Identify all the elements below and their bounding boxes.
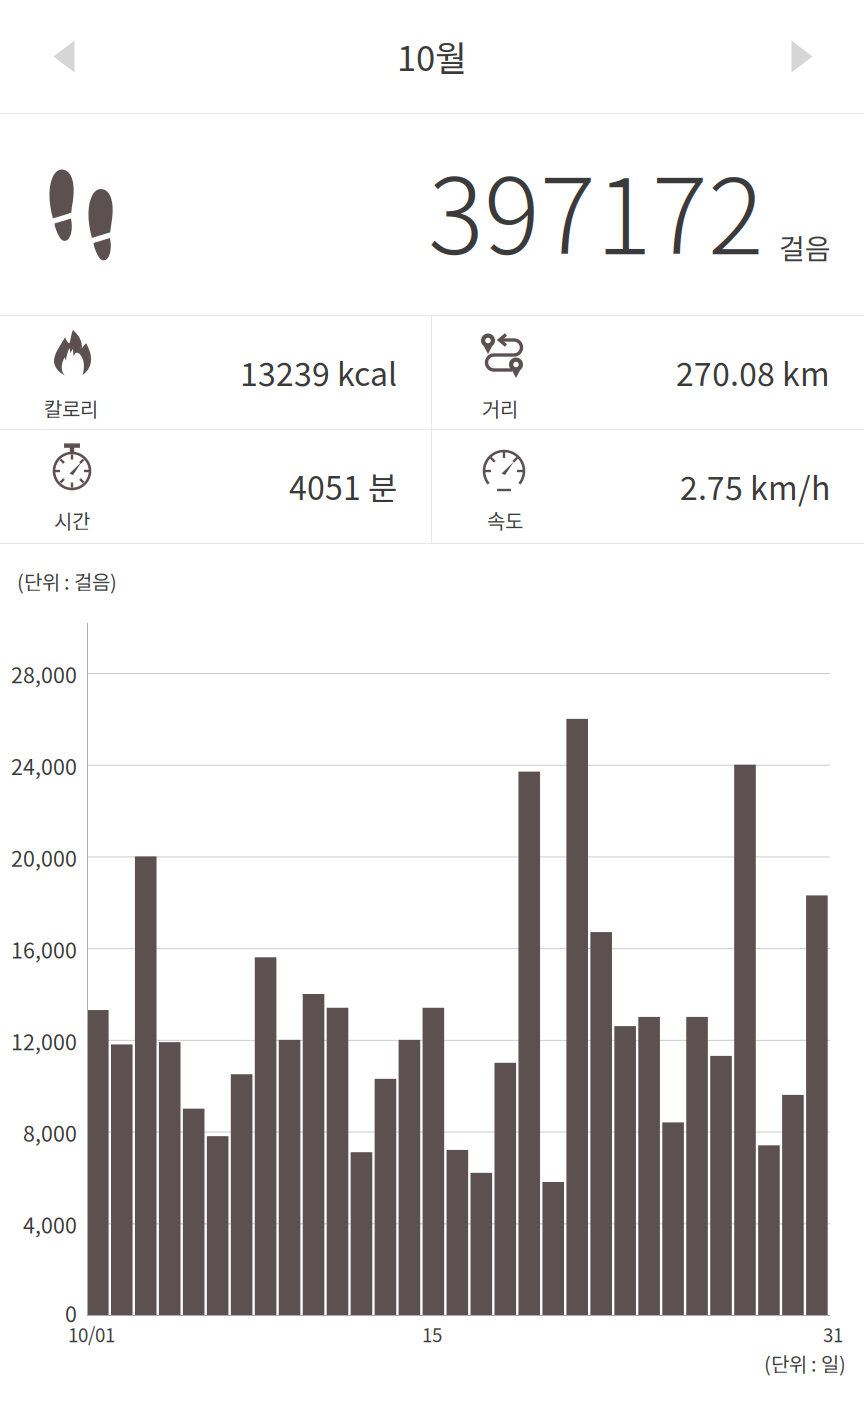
staticText: 16,000 <box>11 934 77 965</box>
button[interactable] <box>0 0 864 1403</box>
staticText: 2.75 km/h <box>680 463 830 509</box>
staticText: 24,000 <box>11 750 77 781</box>
staticText: 10/01 <box>68 1320 115 1347</box>
staticText: 0 <box>65 1298 77 1328</box>
staticText: 거리 <box>482 393 518 422</box>
staticText: 31 <box>823 1320 843 1347</box>
staticText: 20,000 <box>11 842 77 873</box>
staticText: 10월 <box>397 31 467 81</box>
button[interactable] <box>0 0 864 1403</box>
staticText: 270.08 km <box>676 349 830 395</box>
staticText: 4051 분 <box>289 463 397 509</box>
staticText: 칼로리 <box>44 393 98 422</box>
staticText: 397172 <box>428 134 764 284</box>
staticText: 15 <box>422 1320 442 1347</box>
staticText: 걸음 <box>779 227 831 267</box>
staticText: (단위 : 걸음) <box>17 566 117 595</box>
staticText: 속도 <box>487 505 523 534</box>
staticText: 시간 <box>54 505 90 534</box>
staticText: 28,000 <box>11 659 77 689</box>
staticText: 4,000 <box>23 1209 77 1240</box>
staticText: 8,000 <box>23 1117 77 1148</box>
staticText: (단위 : 일) <box>764 1348 846 1377</box>
button[interactable] <box>0 0 864 1403</box>
staticText: 12,000 <box>11 1025 77 1056</box>
button[interactable]: Previous month <box>0 0 864 1403</box>
button[interactable] <box>0 0 864 1403</box>
button[interactable]: Next month <box>0 0 864 1403</box>
staticText: 13239 kcal <box>240 349 397 395</box>
